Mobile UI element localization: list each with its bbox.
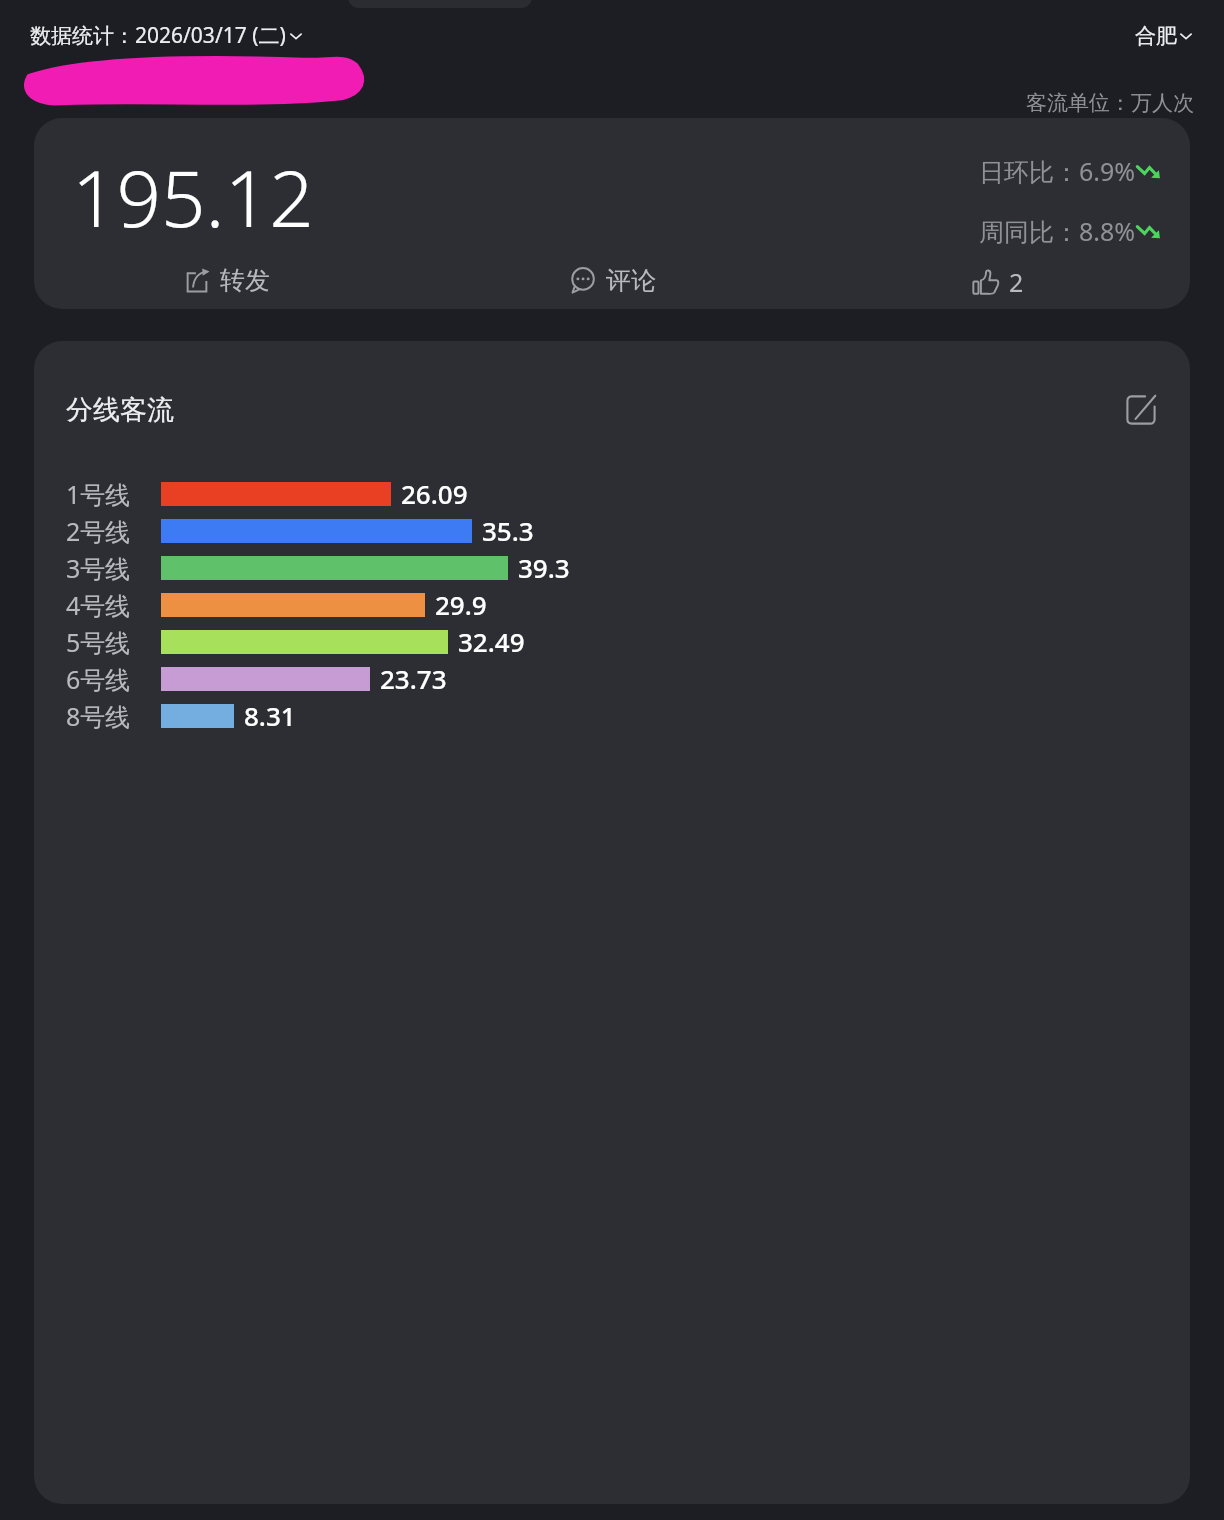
button[interactable]: 数据统计：2026/03/17 (二) (30, 21, 304, 50)
staticText: 39.3 (518, 550, 570, 585)
staticText: 5号线 (66, 625, 161, 659)
staticText: 23.73 (380, 661, 447, 696)
button[interactable]: 195.12 (34, 118, 1190, 309)
staticText: 4号线 (66, 588, 161, 622)
staticText: 35.3 (482, 513, 534, 548)
staticText: 2号线 (66, 514, 161, 548)
staticText: 评论 (606, 265, 656, 296)
staticText: 客流单位：万人次 (1026, 90, 1194, 116)
staticText: 29.9 (435, 587, 487, 622)
staticText: 合肥 (1135, 23, 1177, 49)
staticText: 1号线 (66, 477, 161, 511)
staticText: 32.49 (458, 624, 525, 659)
staticText: 8号线 (66, 699, 161, 733)
staticText: 6号线 (66, 662, 161, 696)
staticText: 8.31 (244, 698, 296, 733)
button[interactable]: 合肥 (1135, 23, 1194, 49)
button[interactable]: 转发 (184, 265, 270, 296)
staticText: 分线客流 (66, 393, 174, 427)
staticText: 转发 (220, 265, 270, 296)
button[interactable]: 2号线 (34, 512, 1190, 549)
staticText: 26.09 (401, 476, 468, 511)
button[interactable]: 3号线 (34, 549, 1190, 586)
staticText: 日环比：6.9% (978, 154, 1135, 188)
staticText: 数据统计：2026/03/17 (二) (30, 21, 286, 50)
staticText: 195.12 (72, 144, 314, 250)
button[interactable]: 6号线 (34, 660, 1190, 697)
button[interactable]: 4号线 (34, 586, 1190, 623)
button[interactable]: 评论 (569, 265, 656, 296)
button[interactable]: 8号线 (34, 697, 1190, 734)
button[interactable]: 2 (972, 265, 1024, 299)
staticText: 3号线 (66, 551, 161, 585)
staticText: 2 (1009, 265, 1024, 299)
button[interactable]: 编辑 (1120, 389, 1162, 431)
button[interactable]: 1号线 (34, 475, 1190, 512)
staticText: 周同比：8.8% (978, 214, 1135, 248)
button[interactable]: 5号线 (34, 623, 1190, 660)
